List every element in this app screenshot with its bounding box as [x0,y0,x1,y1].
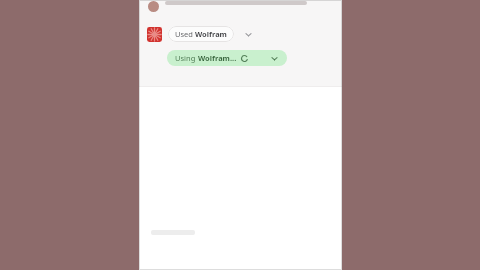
button[interactable]: Expand plugin details [241,27,255,41]
staticText: Wolfram [195,29,227,39]
other: Expand [270,54,279,63]
staticText: Used [175,29,195,39]
staticText: Using [175,53,198,63]
other: Loading [241,55,248,62]
staticText: Wolfram... [198,53,237,63]
button[interactable]: Using [167,50,287,66]
other: Wolfram plugin [147,27,162,42]
button[interactable]: Used [168,26,234,42]
